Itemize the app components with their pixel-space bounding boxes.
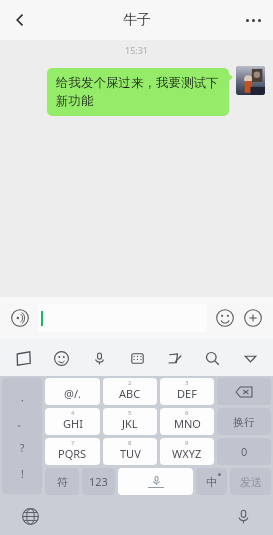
button[interactable]: 2 (103, 378, 157, 405)
staticText: 7 (71, 439, 75, 447)
button[interactable]: Collapse keyboard (237, 345, 263, 371)
staticText: 中 (206, 475, 217, 489)
staticText: 4 (71, 409, 75, 417)
staticText: 牛子 (123, 11, 151, 29)
staticText: 15:31 (0, 44, 273, 56)
button[interactable]: 符 (45, 468, 79, 495)
staticText: 换行 (233, 415, 255, 429)
button[interactable]: 发送 (230, 468, 271, 495)
button[interactable]: Back (0, 0, 40, 40)
staticText: 给我发个屎过来，我要测试下新功能 (56, 75, 220, 109)
button[interactable]: 8 (103, 438, 157, 465)
button[interactable]: @/. (45, 378, 100, 405)
staticText: @/. (64, 386, 81, 401)
staticText: 5 (128, 409, 132, 417)
button[interactable]: 4 (45, 408, 100, 435)
staticText: 9 (185, 439, 189, 447)
button[interactable]: Sogou input (10, 345, 36, 371)
staticText: ABC (119, 386, 141, 401)
button[interactable]: 7 (45, 438, 100, 465)
staticText: ， (17, 391, 27, 404)
button[interactable]: 中 (196, 468, 227, 495)
staticText: PQRS (58, 446, 87, 461)
staticText: 0 (241, 444, 248, 459)
staticText: ? (20, 441, 25, 455)
button[interactable]: Voice input (8, 306, 32, 330)
button[interactable]: ， (2, 378, 42, 494)
button[interactable]: Switch language (18, 504, 42, 528)
button[interactable]: 3 (160, 378, 214, 405)
staticText: GHI (63, 416, 83, 431)
button[interactable]: Handwriting (161, 345, 187, 371)
staticText: 123 (89, 474, 108, 489)
staticText: ! (21, 467, 24, 481)
button[interactable]: Voice input (231, 504, 255, 528)
button[interactable]: More functions (241, 306, 265, 330)
staticText: 发送 (240, 475, 262, 489)
button[interactable]: Space (118, 468, 193, 495)
button[interactable]: 9 (160, 438, 214, 465)
staticText: 8 (128, 439, 132, 447)
staticText: MNO (174, 416, 201, 431)
staticText: TUV (120, 446, 141, 461)
staticText: JKL (122, 416, 138, 431)
staticText: DEF (177, 386, 197, 401)
button[interactable]: More options (233, 0, 273, 40)
staticText: 符 (57, 475, 68, 489)
button[interactable]: 6 (160, 408, 214, 435)
staticText: WXYZ (172, 446, 202, 461)
button[interactable]: Emoji (213, 306, 237, 330)
staticText: 。 (17, 416, 27, 429)
staticText: 2 (128, 379, 132, 387)
button[interactable]: 换行 (217, 408, 271, 435)
staticText: 3 (185, 379, 189, 387)
staticText: 6 (185, 409, 189, 417)
button[interactable] (38, 304, 207, 332)
button[interactable]: Search (199, 345, 225, 371)
button[interactable]: Keyboard (124, 345, 150, 371)
button[interactable]: Emoji (48, 345, 74, 371)
button[interactable]: 给我发个屎过来，我要测试下新功能 (47, 68, 229, 116)
button[interactable]: Voice (86, 345, 112, 371)
button[interactable]: 123 (82, 468, 115, 495)
button[interactable]: Backspace (217, 378, 271, 405)
button[interactable]: 0 (217, 438, 271, 465)
button[interactable]: 5 (103, 408, 157, 435)
